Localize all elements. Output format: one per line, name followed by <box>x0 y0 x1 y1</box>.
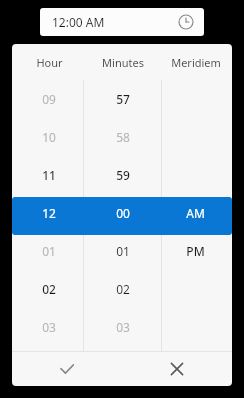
staticText: 03 <box>116 319 130 335</box>
staticText: 12:00 AM <box>52 14 105 30</box>
staticText: Meridiem <box>171 55 221 70</box>
button[interactable]: 11 <box>12 156 86 194</box>
staticText: 57 <box>116 91 130 107</box>
staticText: 59 <box>116 167 130 183</box>
staticText: 10 <box>42 129 56 145</box>
button[interactable]: 12 <box>12 194 86 232</box>
button[interactable]: 10 <box>12 118 86 156</box>
staticText: PM <box>186 243 205 259</box>
button[interactable]: 00 <box>86 194 159 232</box>
button[interactable]: Pick time <box>178 14 194 30</box>
staticText: 01 <box>116 243 130 259</box>
staticText: 02 <box>116 281 130 297</box>
button[interactable]: 01 <box>12 232 86 270</box>
button[interactable]: Confirm <box>12 352 122 386</box>
button[interactable]: AM <box>159 194 232 232</box>
staticText: 12 <box>42 205 56 221</box>
staticText: Hour <box>36 55 63 70</box>
staticText: AM <box>186 205 205 221</box>
button[interactable]: Cancel <box>122 352 232 386</box>
button[interactable]: 57 <box>86 80 159 118</box>
button[interactable]: 58 <box>86 118 159 156</box>
button[interactable]: 02 <box>12 270 86 308</box>
button[interactable]: 03 <box>12 308 86 346</box>
button[interactable]: 01 <box>86 232 159 270</box>
button[interactable]: 12:00 AM <box>40 8 204 36</box>
staticText: 00 <box>116 205 130 221</box>
button[interactable]: 03 <box>86 308 159 346</box>
button[interactable]: 09 <box>12 80 86 118</box>
staticText: 58 <box>116 129 130 145</box>
staticText: Minutes <box>102 55 144 70</box>
staticText: 11 <box>42 167 56 183</box>
staticText: 01 <box>42 243 56 259</box>
staticText: 09 <box>42 91 56 107</box>
staticText: 03 <box>42 319 56 335</box>
button[interactable]: 59 <box>86 156 159 194</box>
button[interactable]: PM <box>159 232 232 270</box>
staticText: 02 <box>42 281 56 297</box>
button[interactable]: 02 <box>86 270 159 308</box>
